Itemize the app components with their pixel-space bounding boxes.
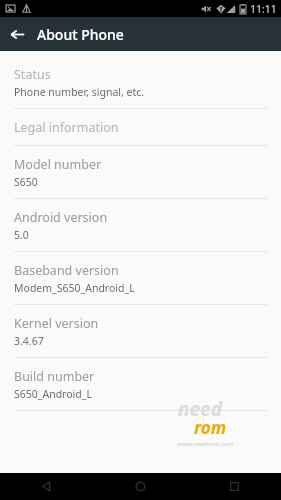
staticText: need [178,396,222,422]
button[interactable]: Back [0,17,34,51]
button[interactable]: Home [93,473,187,500]
button[interactable]: Status [0,56,281,108]
staticText: Android version [14,209,108,226]
staticText: 11:11 [250,2,277,16]
staticText: Legal information [14,119,119,136]
button[interactable]: Build number [0,358,281,410]
staticText: rom [194,416,227,439]
staticText: Model number [14,156,102,173]
staticText: Baseband version [14,262,119,279]
staticText: S650_Android_L [14,387,92,401]
staticText: Kernel version [14,315,99,332]
button[interactable]: Android version [0,199,281,251]
button[interactable]: Baseband version [0,252,281,304]
staticText: Status [14,66,51,83]
staticText: Build number [14,368,95,385]
button[interactable]: Recent apps [187,473,281,500]
staticText: S650 [14,175,38,189]
staticText: About Phone [37,25,124,44]
button[interactable]: Legal information [0,109,281,145]
staticText: 5.0 [14,228,29,242]
staticText: Modem_S650_Android_L [14,281,135,295]
button[interactable]: Back [0,473,93,500]
button[interactable]: Model number [0,146,281,198]
button[interactable]: Kernel version [0,305,281,357]
staticText: 3.4.67 [14,334,44,348]
staticText: Phone number, signal, etc. [14,85,145,99]
staticText: www.needrom.com [178,440,234,448]
